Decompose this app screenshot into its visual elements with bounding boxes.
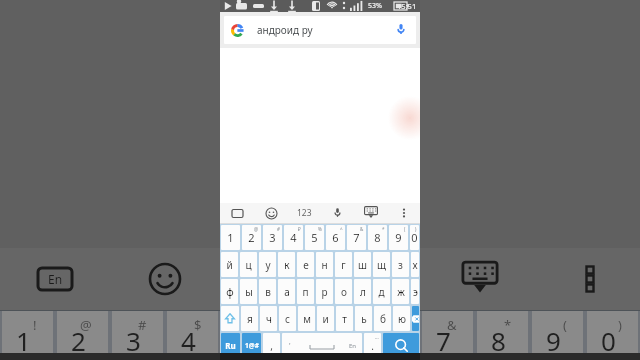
button[interactable]: й (221, 252, 238, 277)
button[interactable]: к (278, 252, 295, 277)
button[interactable]: Backspace (412, 306, 419, 331)
button[interactable]: Emoji (254, 203, 288, 223)
staticText: я (247, 312, 253, 326)
button[interactable]: п (297, 279, 314, 304)
button[interactable]: ж (392, 279, 409, 304)
button[interactable]: у (259, 252, 276, 277)
button[interactable]: Voice search (393, 22, 409, 38)
button[interactable]: , (263, 333, 280, 358)
button[interactable]: э (411, 279, 419, 304)
staticText: 15:51 (397, 1, 417, 11)
button[interactable]: г (335, 252, 352, 277)
button[interactable]: ш (354, 252, 371, 277)
staticText: & (360, 226, 364, 232)
staticText: * (382, 226, 385, 232)
button[interactable]: а (278, 279, 295, 304)
button[interactable]: Voice input (321, 203, 354, 223)
staticText: и (322, 312, 329, 326)
button[interactable]: о (335, 279, 352, 304)
staticText: 3 (269, 230, 276, 245)
staticText: э (413, 285, 418, 299)
staticText: х (412, 258, 418, 272)
staticText: ю (398, 312, 406, 326)
button[interactable]: т (336, 306, 353, 331)
staticText: 1 (227, 230, 234, 245)
staticText: ' (289, 341, 291, 351)
button[interactable]: х (411, 252, 419, 277)
staticText: 4 (290, 230, 297, 245)
button[interactable]: . (364, 333, 381, 358)
button[interactable]: я (241, 306, 258, 331)
staticText: * (504, 316, 512, 334)
button[interactable]: ц (240, 252, 257, 277)
staticText: д (378, 285, 385, 299)
button[interactable]: д (373, 279, 390, 304)
staticText: б (380, 312, 386, 326)
staticText: $ (194, 316, 202, 334)
staticText: 8 (374, 230, 381, 245)
button[interactable]: р (316, 279, 333, 304)
button[interactable]: Language (220, 203, 254, 223)
staticText: з (398, 258, 403, 272)
button[interactable]: 1@# (242, 333, 261, 358)
button[interactable]: е (297, 252, 314, 277)
staticText: 5 (311, 230, 318, 245)
staticText: ы (245, 285, 253, 299)
staticText: п (302, 285, 309, 299)
staticText: ч (266, 312, 272, 326)
staticText: к (284, 258, 290, 272)
staticText: 1 (16, 323, 31, 358)
staticText: 6 (332, 230, 339, 245)
button[interactable]: з (392, 252, 409, 277)
button[interactable]: м (298, 306, 315, 331)
staticText: ₽ (298, 226, 301, 232)
staticText: ф (226, 285, 234, 299)
staticText: & (447, 316, 457, 334)
staticText: е (303, 258, 309, 272)
button[interactable]: н (316, 252, 333, 277)
button[interactable]: 1 (221, 225, 240, 250)
button[interactable]: Numbers (288, 203, 321, 223)
button[interactable]: ф (221, 279, 238, 304)
button[interactable]: 6 (326, 225, 345, 250)
button[interactable]: 0 (410, 225, 419, 250)
button[interactable]: и (317, 306, 334, 331)
button[interactable]: Search (383, 333, 419, 358)
button[interactable]: 2 (242, 225, 261, 250)
staticText: й (226, 258, 233, 272)
staticText: ( (404, 226, 406, 232)
button[interactable]: 8 (368, 225, 387, 250)
staticText: т (342, 312, 347, 326)
staticText: ц (245, 258, 252, 272)
staticText: 8 (491, 323, 506, 358)
button[interactable]: ю (393, 306, 410, 331)
staticText: 4 (181, 323, 196, 358)
button[interactable]: л (354, 279, 371, 304)
button[interactable]: ь (355, 306, 372, 331)
button[interactable]: 3 (263, 225, 282, 250)
button[interactable]: Ru (221, 333, 240, 358)
button[interactable]: Hide keyboard (354, 203, 387, 223)
staticText: , (270, 339, 273, 353)
button[interactable]: б (374, 306, 391, 331)
staticText: 7 (436, 323, 451, 358)
button[interactable]: ы (240, 279, 257, 304)
button[interactable]: 4 (284, 225, 303, 250)
button[interactable]: 9 (389, 225, 408, 250)
staticText: 0 (411, 230, 418, 245)
staticText: 2 (248, 230, 255, 245)
button[interactable]: 7 (347, 225, 366, 250)
staticText: En (349, 342, 357, 350)
button[interactable]: с (279, 306, 296, 331)
button[interactable]: ч (260, 306, 277, 331)
button[interactable]: в (259, 279, 276, 304)
staticText: Ru (225, 340, 236, 351)
staticText: ш (358, 258, 367, 272)
button[interactable]: More options (387, 203, 420, 223)
button[interactable]: Space (282, 333, 362, 358)
button[interactable]: 5 (305, 225, 324, 250)
button[interactable]: щ (373, 252, 390, 277)
button[interactable]: андроид ру (224, 16, 416, 44)
staticText: 9 (395, 230, 402, 245)
button[interactable]: Shift (221, 306, 239, 331)
